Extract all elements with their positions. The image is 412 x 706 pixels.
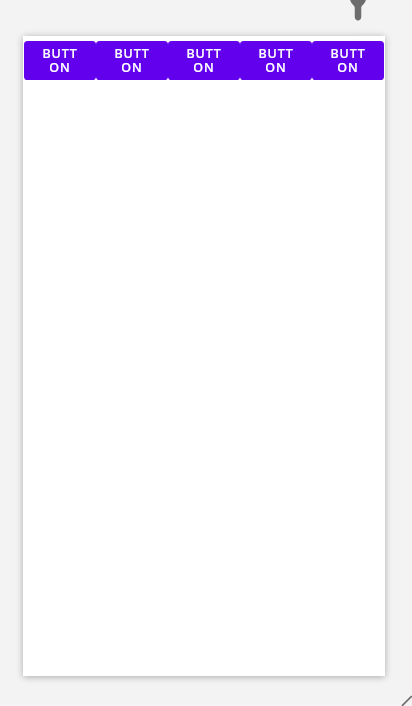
button[interactable]: Filter	[344, 0, 372, 22]
staticText: BUTTON	[40, 45, 80, 76]
staticText: BUTTON	[112, 45, 152, 76]
staticText: BUTTON	[184, 45, 224, 76]
staticText: BUTTON	[256, 45, 296, 76]
button[interactable]: BUTTON	[312, 41, 384, 80]
button[interactable]: BUTTON	[240, 41, 312, 80]
button[interactable]: BUTTON	[168, 41, 240, 80]
button[interactable]: BUTTON	[96, 41, 168, 80]
staticText: BUTTON	[328, 45, 368, 76]
button[interactable]: BUTTON	[24, 41, 96, 80]
